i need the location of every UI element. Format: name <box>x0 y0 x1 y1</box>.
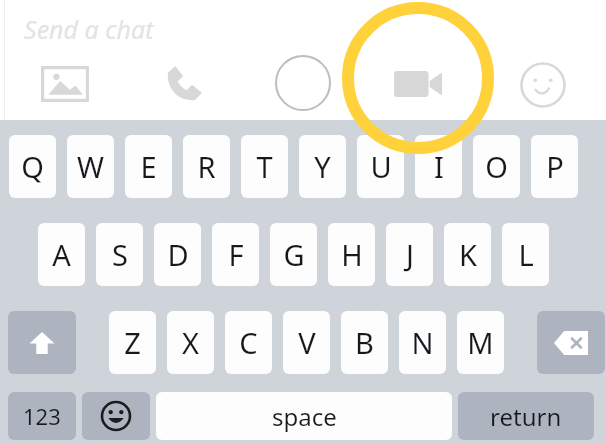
staticText: I <box>434 147 444 186</box>
button[interactable]: A <box>38 223 85 286</box>
staticText: R <box>197 147 216 186</box>
button[interactable]: Shift <box>8 311 76 374</box>
button[interactable]: L <box>502 223 549 286</box>
button[interactable]: Y <box>299 135 346 198</box>
button[interactable]: space <box>156 392 452 440</box>
staticText: H <box>341 235 363 274</box>
staticText: Send a chat <box>24 12 154 46</box>
button[interactable]: S <box>96 223 143 286</box>
button[interactable]: K <box>444 223 491 286</box>
button[interactable]: B <box>341 311 388 374</box>
button[interactable]: V <box>283 311 330 374</box>
staticText: U <box>370 147 392 186</box>
button[interactable]: Send photo <box>30 58 100 110</box>
staticText: N <box>411 323 434 362</box>
staticText: W <box>77 147 104 186</box>
button[interactable]: X <box>167 311 214 374</box>
staticText: F <box>228 235 244 274</box>
button[interactable]: Call <box>150 55 218 113</box>
button[interactable]: W <box>67 135 114 198</box>
staticText: G <box>283 235 305 274</box>
staticText: return <box>490 400 562 433</box>
button[interactable]: C <box>225 311 272 374</box>
staticText: Z <box>124 323 141 362</box>
button[interactable]: U <box>357 135 404 198</box>
staticText: Y <box>314 147 331 186</box>
staticText: B <box>355 323 374 362</box>
staticText: space <box>272 400 337 433</box>
staticText: S <box>112 235 128 274</box>
staticText: K <box>459 235 477 274</box>
staticText: 123 <box>23 401 61 431</box>
staticText: V <box>298 323 316 362</box>
button[interactable]: G <box>270 223 317 286</box>
button[interactable]: I <box>415 135 462 198</box>
button[interactable]: R <box>183 135 230 198</box>
button[interactable]: M <box>457 311 504 374</box>
button[interactable]: O <box>473 135 520 198</box>
button[interactable]: J <box>386 223 433 286</box>
button[interactable]: T <box>241 135 288 198</box>
button[interactable]: Stickers <box>512 54 574 116</box>
button[interactable]: D <box>154 223 201 286</box>
staticText: Q <box>21 147 44 186</box>
staticText: X <box>182 323 199 362</box>
button[interactable]: P <box>531 135 578 198</box>
staticText: T <box>256 147 273 186</box>
button[interactable]: F <box>212 223 259 286</box>
button[interactable]: Q <box>9 135 56 198</box>
staticText: A <box>52 235 71 274</box>
staticText: O <box>485 147 508 186</box>
staticText: D <box>167 235 189 274</box>
staticText: J <box>406 235 414 274</box>
staticText: C <box>239 323 258 362</box>
button[interactable]: Z <box>109 311 156 374</box>
staticText: M <box>467 323 494 362</box>
button[interactable]: Capture <box>273 53 333 113</box>
staticText: E <box>140 147 157 186</box>
button[interactable]: H <box>328 223 375 286</box>
button[interactable]: Video call <box>385 58 451 110</box>
button[interactable]: Emoji <box>82 392 150 440</box>
staticText: P <box>546 147 564 186</box>
staticText: L <box>518 235 534 274</box>
button[interactable]: 123 <box>8 392 76 440</box>
button[interactable]: N <box>399 311 446 374</box>
button[interactable]: E <box>125 135 172 198</box>
button[interactable]: return <box>458 392 594 440</box>
button[interactable]: Backspace <box>537 311 605 374</box>
